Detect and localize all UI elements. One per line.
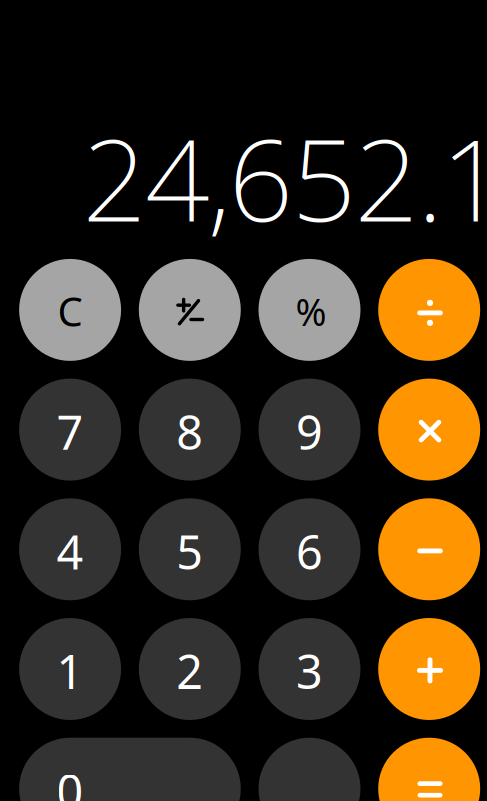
button[interactable]: 8 [139, 379, 241, 481]
button[interactable]: 3 [258, 618, 360, 720]
button[interactable]: Subtract [378, 498, 480, 600]
button[interactable]: 2 [139, 618, 241, 720]
staticText: C [58, 284, 83, 338]
staticText: 1 [57, 640, 84, 702]
staticText: 5 [176, 520, 203, 582]
staticText: 0 [57, 760, 84, 801]
staticText: % [295, 287, 326, 336]
staticText: 4 [57, 520, 84, 582]
button[interactable]: Divide [378, 259, 480, 361]
button[interactable]: 9 [258, 379, 360, 481]
button[interactable]: C [19, 259, 121, 361]
button[interactable]: 6 [258, 498, 360, 600]
staticText: 24,652.1 [82, 102, 487, 253]
button[interactable]: Equals [378, 738, 480, 801]
staticText: 3 [296, 640, 323, 702]
button[interactable]: Add [378, 618, 480, 720]
button[interactable]: 0 [19, 738, 241, 801]
button[interactable]: Plus minus [139, 259, 241, 361]
button[interactable]: % [258, 259, 360, 361]
button[interactable]: Multiply [378, 379, 480, 481]
staticText: 7 [57, 401, 84, 463]
button[interactable]: 5 [139, 498, 241, 600]
staticText: 6 [296, 520, 323, 582]
staticText: 9 [296, 401, 323, 463]
staticText: 2 [176, 640, 203, 702]
button[interactable]: 4 [19, 498, 121, 600]
button[interactable]: . [258, 738, 360, 801]
button[interactable]: 7 [19, 379, 121, 481]
button[interactable]: 1 [19, 618, 121, 720]
staticText: 8 [176, 401, 203, 463]
